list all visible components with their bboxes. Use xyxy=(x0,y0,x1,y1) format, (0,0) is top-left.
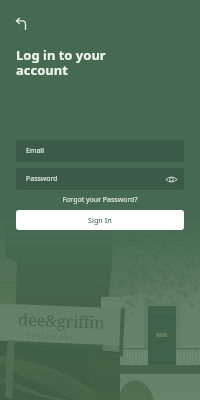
staticText: Password xyxy=(26,174,58,184)
button[interactable]: Email xyxy=(16,140,184,162)
staticText: Email xyxy=(26,146,44,156)
staticText: Log in to your account xyxy=(16,46,106,79)
staticText: Sign In xyxy=(88,215,112,225)
button[interactable]: Password xyxy=(16,168,184,190)
button[interactable]: Sign In xyxy=(16,210,184,230)
staticText: dee&griffin xyxy=(18,308,106,334)
staticText: S O L I C I T O R S xyxy=(27,332,73,340)
button[interactable]: Show password xyxy=(165,173,178,186)
button[interactable]: Forgot your Password? xyxy=(16,195,184,205)
button[interactable]: Back xyxy=(8,10,36,38)
